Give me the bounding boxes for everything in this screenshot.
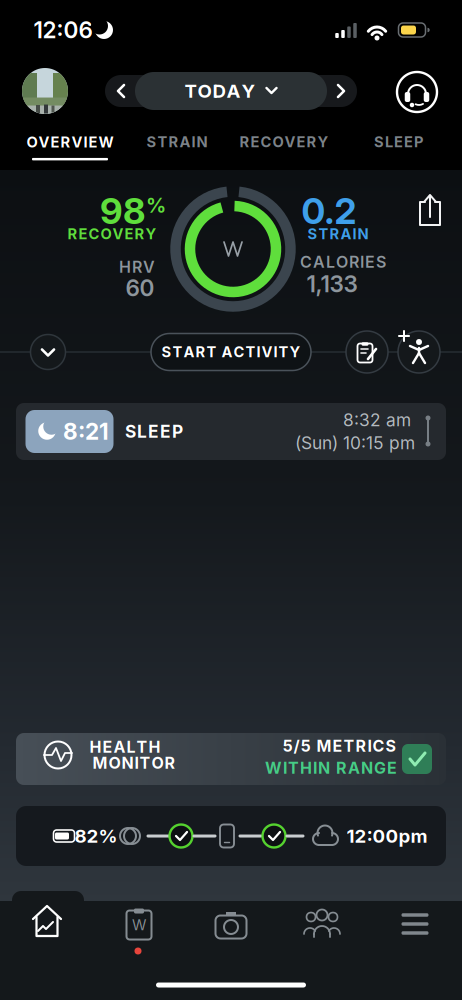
staticText: 8:21 — [63, 418, 109, 445]
staticText: H E A L T H — [89, 738, 160, 756]
button[interactable]: Journal — [109, 896, 169, 956]
staticText: 82% — [74, 825, 117, 847]
button[interactable]: O V E R V I E W — [26, 134, 113, 160]
staticText: 1,133 — [306, 271, 357, 297]
button[interactable]: Home — [17, 892, 77, 952]
button[interactable]: S T R A I N — [146, 133, 207, 151]
staticText: 12:00pm — [346, 825, 427, 847]
staticText: % — [146, 194, 166, 217]
button[interactable]: Community — [292, 895, 352, 955]
staticText: 98 — [100, 190, 145, 232]
staticText: S T R A I N — [307, 225, 368, 243]
staticText: 0.2 — [301, 190, 356, 232]
staticText: 5 / 5 M E T R I C S — [282, 737, 395, 755]
staticText: C A L O R I E S — [300, 253, 386, 271]
staticText: (Sun) 10:15 pm — [295, 433, 415, 453]
staticText: R E C O V E R Y — [67, 225, 156, 243]
staticText: S L E E P — [125, 421, 183, 442]
button[interactable]: Next day — [326, 76, 356, 106]
staticText: R E C O V E R Y — [239, 133, 328, 151]
button[interactable]: Profile — [22, 68, 68, 114]
button[interactable]: 8:21 — [16, 403, 446, 460]
staticText: 12:06 — [33, 17, 92, 43]
button[interactable]: Support — [395, 70, 439, 114]
button[interactable]: S T A R T A C T I V I T Y — [151, 333, 311, 370]
staticText: S L E E P — [374, 133, 424, 151]
button[interactable]: H E A L T H — [16, 733, 446, 785]
button[interactable]: S L E E P — [374, 133, 424, 151]
button[interactable]: Camera — [201, 895, 261, 955]
staticText: W — [132, 916, 146, 934]
staticText: W I T H I N R A N G E — [265, 759, 397, 777]
button[interactable]: Menu — [385, 894, 445, 954]
button[interactable]: 82% — [16, 806, 446, 866]
button[interactable]: R E C O V E R Y — [239, 133, 328, 151]
staticText: M O N I T O R — [92, 754, 175, 772]
button[interactable]: Journal — [346, 331, 388, 373]
staticText: H R V — [119, 258, 155, 276]
staticText: 60 — [125, 275, 154, 301]
button[interactable]: Share — [412, 187, 448, 231]
staticText: S T R A I N — [146, 133, 207, 151]
staticText: 8:32 am — [343, 410, 411, 430]
button[interactable]: Collapse — [30, 334, 65, 369]
button[interactable]: Previous day — [106, 76, 136, 106]
button[interactable]: Select date — [135, 72, 327, 110]
staticText: O V E R V I E W — [26, 134, 113, 151]
staticText: S T A R T A C T I V I T Y — [161, 343, 300, 361]
button[interactable]: Add activity — [398, 331, 440, 373]
staticText: T O D A Y — [184, 80, 255, 102]
